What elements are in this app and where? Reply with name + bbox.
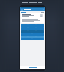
button[interactable] — [20, 66, 45, 69]
button[interactable]: Menu — [20, 8, 45, 11]
button[interactable] — [21, 13, 44, 23]
button[interactable] — [21, 12, 44, 13]
